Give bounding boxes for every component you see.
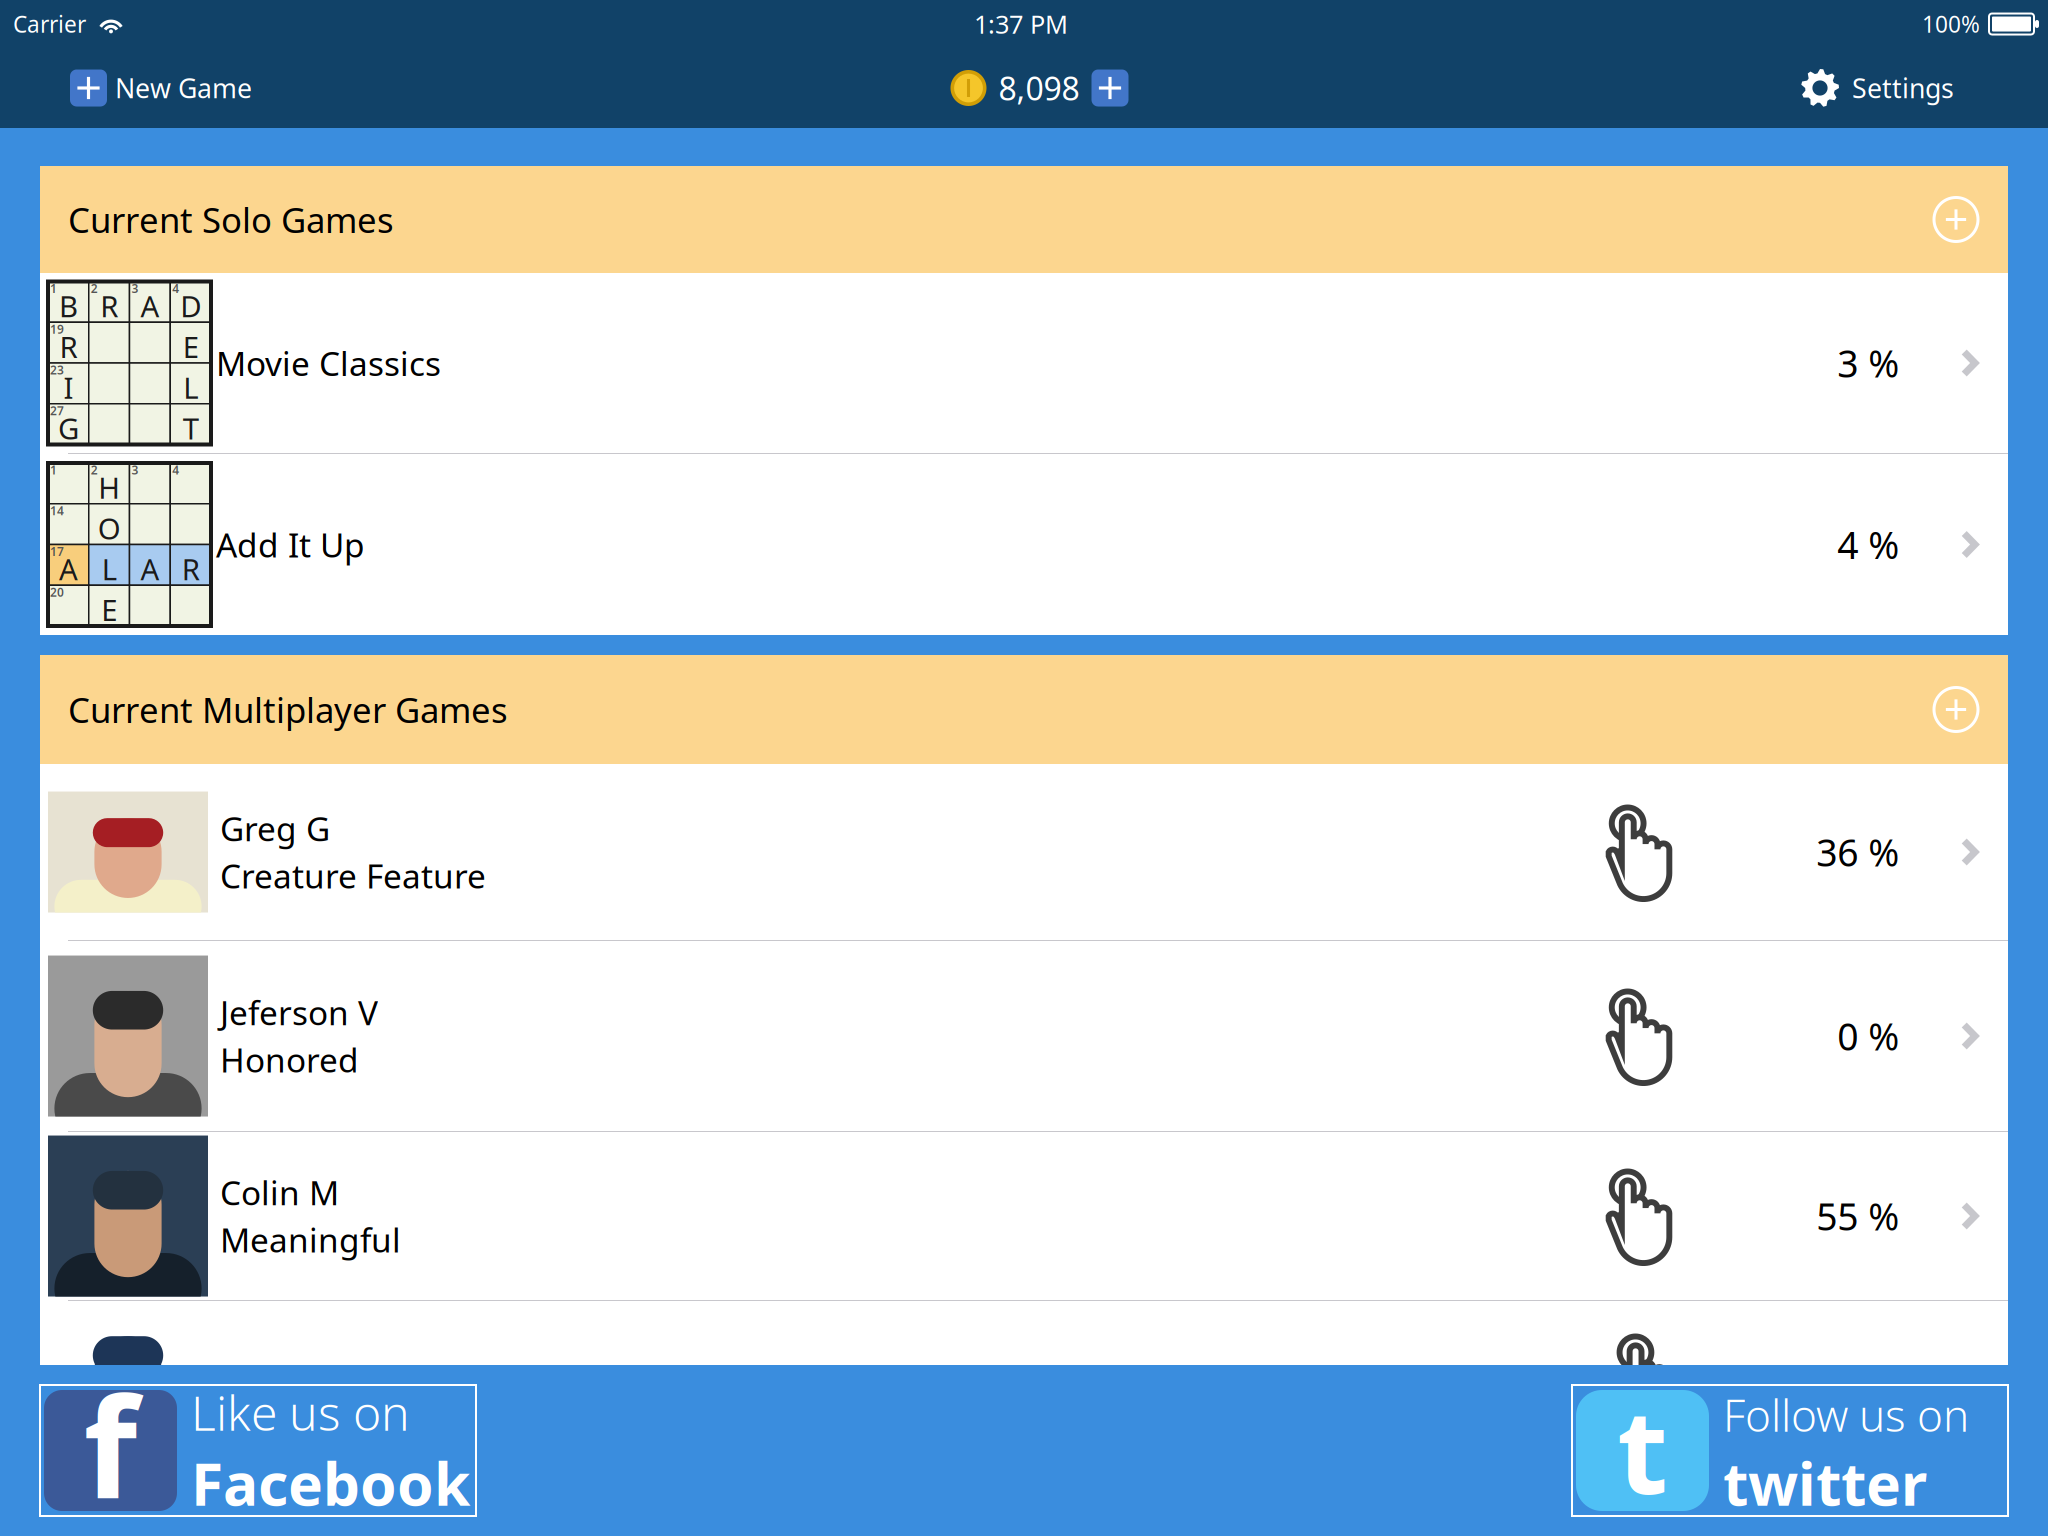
staticText: Settings [1852,70,1954,106]
staticText: 2 [91,280,98,296]
staticText: Colin M [220,1170,339,1214]
staticText: 1:37 PM [974,7,1068,41]
staticText: 55 % [1816,1191,1899,1241]
staticText: O [98,508,121,547]
staticText: 2 [91,462,98,478]
button[interactable]: New Game [0,59,252,116]
button[interactable]: B [40,273,2008,453]
staticText: B [59,286,78,325]
staticText: 1 [50,280,57,296]
staticText: D [180,286,201,325]
staticText: 36 % [1816,827,1899,877]
staticText: New Game [115,70,252,106]
staticText: Creature Feature [220,853,486,898]
staticText: Current Multiplayer Games [68,686,508,732]
staticText: f [83,1352,137,1536]
staticText: L [102,549,117,588]
staticText: 20 [50,584,64,600]
staticText: Add It Up [216,522,365,567]
staticText: E [183,327,199,366]
staticText: Carrier [13,9,86,39]
button[interactable]: Add game [1888,663,2008,755]
staticText: R [59,327,77,366]
staticText: 100% [1922,9,1980,39]
staticText: Current Solo Games [68,196,394,242]
button[interactable]: Settings [1801,59,2048,117]
staticText: E [101,590,117,629]
staticText: L [183,368,198,407]
staticText: 3 [131,280,138,296]
staticText: Greg G [220,806,330,850]
staticText: 17 [50,543,64,559]
staticText: R [100,286,118,325]
button[interactable]: Add game [1888,173,2008,265]
staticText: 3 % [1837,338,1899,388]
staticText: Meaningful [220,1217,401,1262]
staticText: H [98,468,120,507]
button[interactable]: Greg G [40,764,2008,940]
button[interactable]: Colin M [40,1132,2008,1300]
staticText: Like us on [191,1380,410,1444]
button[interactable] [40,454,2008,635]
staticText: Movie Classics [216,341,441,385]
staticText: t [1617,1371,1668,1526]
staticText: A [140,286,159,325]
staticText: G [58,408,79,447]
staticText: 1 [50,462,57,478]
staticText: A [140,549,159,588]
staticText: Facebook [191,1444,470,1522]
button[interactable]: Jeferson V [40,941,2008,1131]
button[interactable]: Buy coins [1079,69,1128,106]
staticText: 4 [172,280,179,296]
button[interactable]: Like us on Facebook [40,1385,476,1516]
staticText: Jeferson V [220,990,378,1034]
button[interactable]: Follow us on Twitter [1572,1385,2008,1516]
staticText: 27 [50,403,64,419]
staticText: 4 [172,462,179,478]
staticText: Follow us on [1723,1386,1969,1444]
staticText: twitter [1723,1444,1927,1522]
staticText: 23 [50,362,64,378]
staticText: Honored [220,1037,359,1082]
staticText: 3 [131,462,138,478]
staticText: 14 [50,503,64,519]
staticText: 0 % [1837,1011,1899,1061]
staticText: I [63,368,73,407]
staticText: 19 [50,321,64,337]
staticText: A [59,549,78,588]
staticText: T [183,408,199,447]
staticText: 8,098 [998,67,1079,109]
staticText: R [182,549,200,588]
staticText: 4 % [1837,520,1899,569]
